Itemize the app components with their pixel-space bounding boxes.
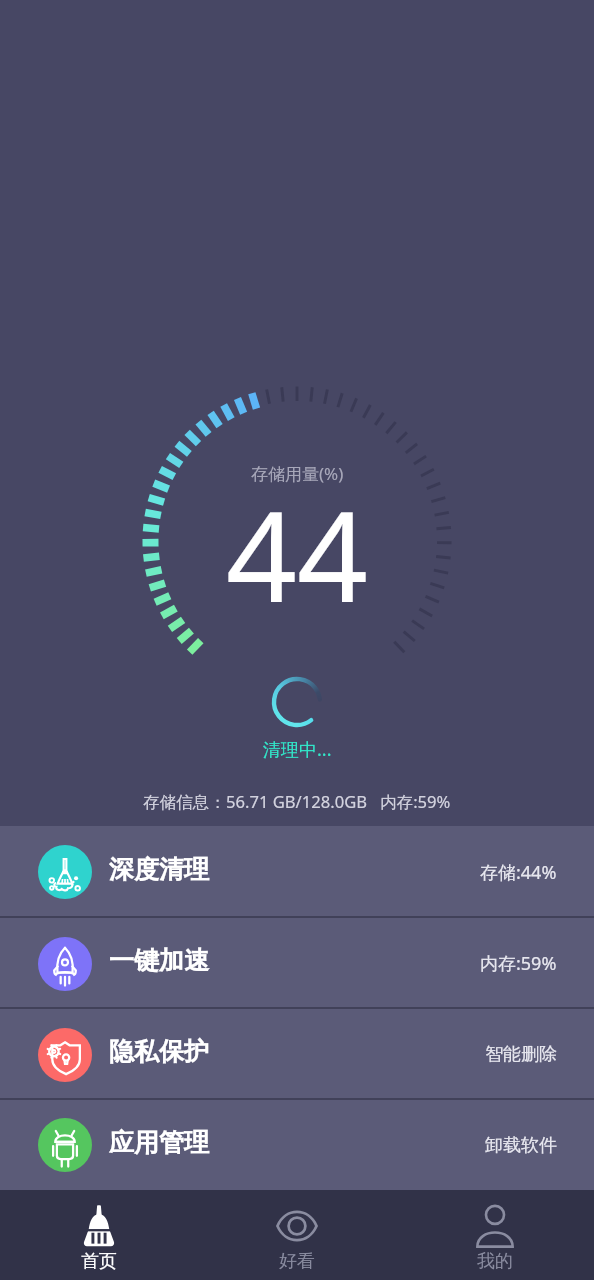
staticText: 清理中...: [263, 737, 332, 762]
staticText: 我的: [477, 1250, 513, 1273]
staticText: 存储信息：56.71 GB/128.0GB 内存:59%: [143, 790, 451, 813]
staticText: 卸载软件: [485, 1134, 557, 1157]
staticText: 44: [226, 469, 368, 638]
staticText: 智能删除: [485, 1043, 557, 1066]
staticText: 存储用量(%): [251, 462, 344, 485]
button[interactable]: 隐私保护: [0, 1009, 594, 1100]
button[interactable]: 一键加速: [0, 918, 594, 1009]
staticText: 存储:44%: [480, 860, 557, 885]
staticText: 好看: [279, 1250, 315, 1273]
button[interactable]: 深度清理: [0, 826, 594, 918]
button[interactable]: 应用管理: [0, 1100, 594, 1190]
button[interactable]: 好看 Discover: [198, 1190, 396, 1280]
staticText: 一键加速: [109, 945, 209, 976]
staticText: 首页: [81, 1250, 117, 1273]
button[interactable]: 我的 Profile: [396, 1190, 594, 1280]
staticText: 应用管理: [109, 1127, 209, 1158]
staticText: 内存:59%: [480, 951, 557, 976]
button[interactable]: 首页 Home: [0, 1190, 198, 1280]
staticText: 深度清理: [109, 854, 209, 885]
staticText: 隐私保护: [109, 1036, 209, 1067]
